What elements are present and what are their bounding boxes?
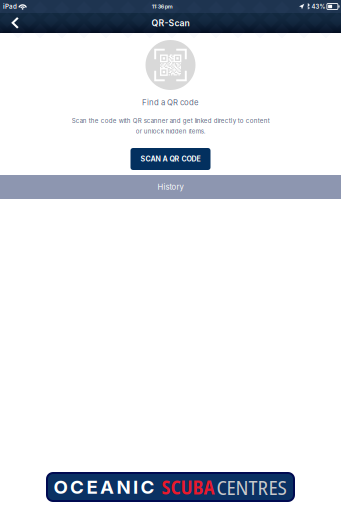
staticText: 43% [311,3,325,10]
staticText: History [157,182,183,192]
button[interactable]: Back [2,13,28,33]
staticText: Find a QR code [142,98,199,107]
staticText: iPad [3,3,17,10]
staticText: QR-Scan [151,18,189,28]
staticText: Scan the code with QR scanner and get li… [71,117,269,135]
staticText: SCUBA [161,474,214,500]
button[interactable]: SCAN A QR CODE [130,148,210,170]
staticText: OCEANIC [53,476,154,498]
button[interactable]: History [0,175,341,199]
staticText: CENTRES [216,473,286,501]
staticText: SCAN A QR CODE [140,155,200,163]
staticText: 11:36 pm [152,3,173,10]
